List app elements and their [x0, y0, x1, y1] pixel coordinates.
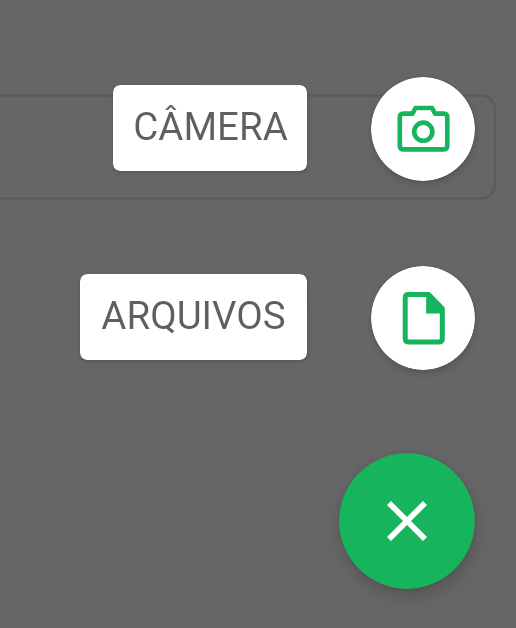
staticText: CÂMERA [133, 104, 288, 149]
button[interactable]: Fechar menu [339, 453, 475, 589]
button[interactable]: ARQUIVOS [80, 274, 307, 360]
button[interactable]: CÂMERA [113, 85, 307, 171]
button[interactable]: CÂMERA [371, 77, 475, 181]
staticText: ARQUIVOS [101, 293, 286, 338]
button[interactable]: ARQUIVOS [371, 266, 475, 370]
